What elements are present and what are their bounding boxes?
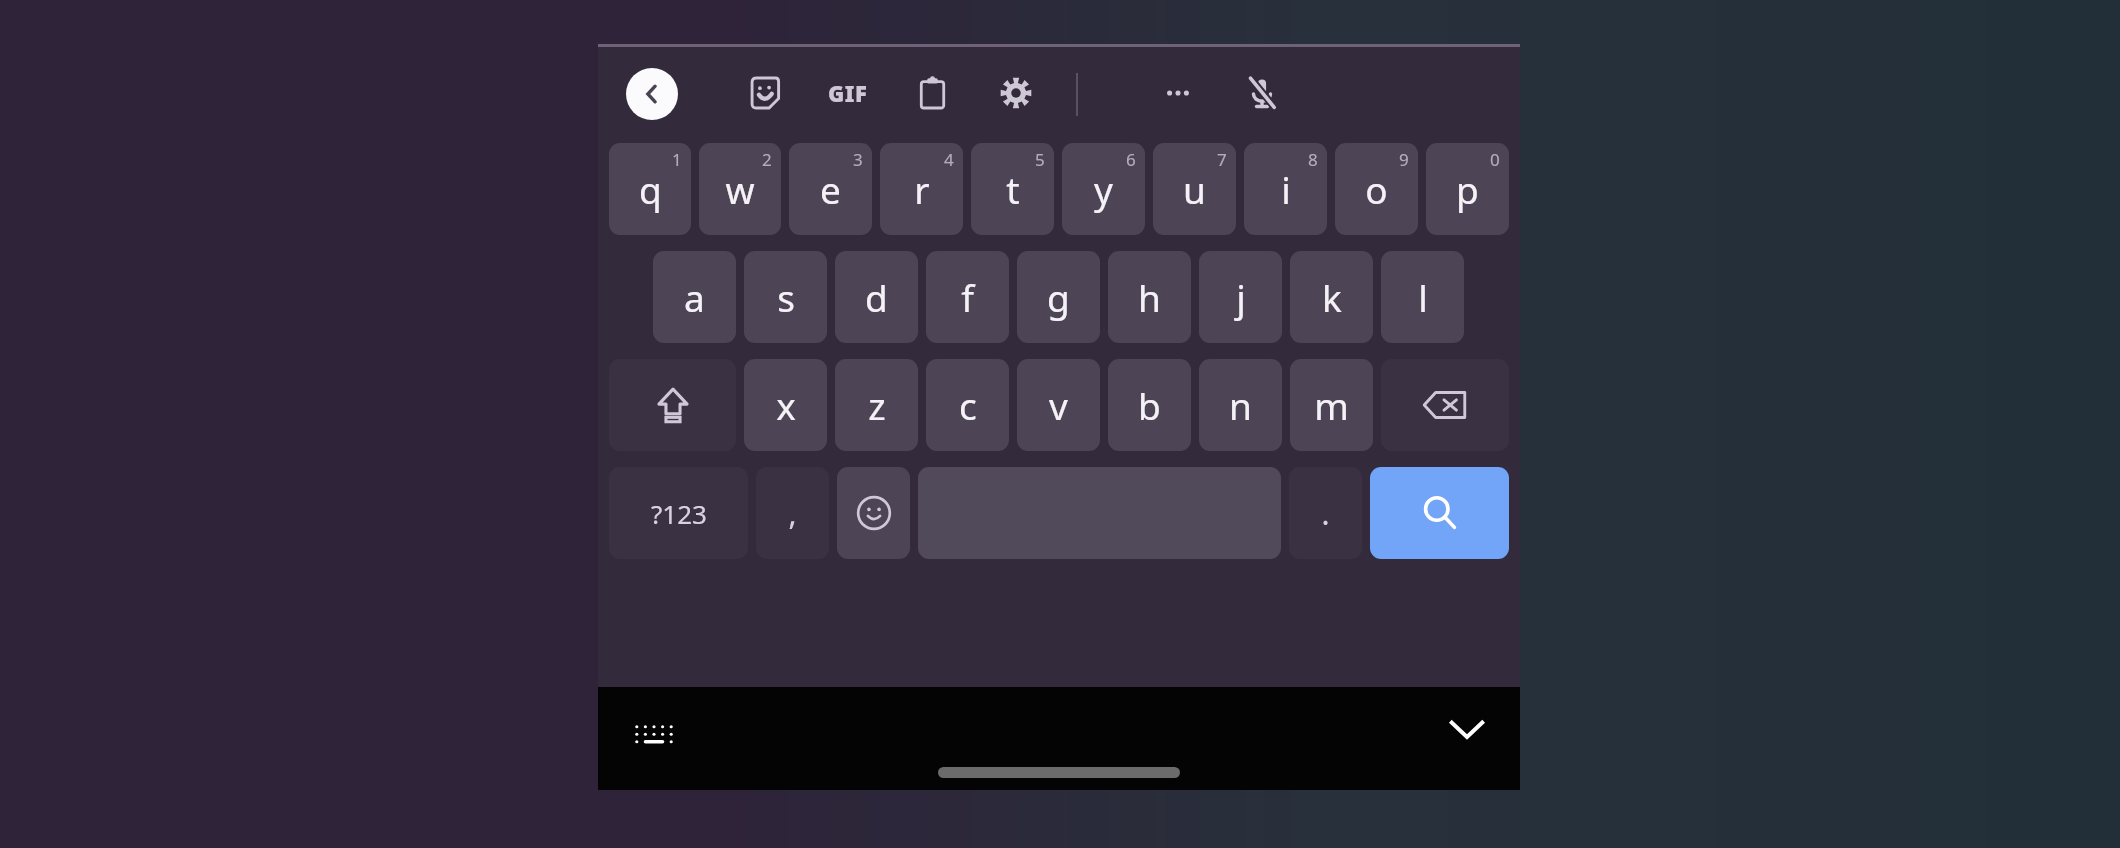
button[interactable]: a: [653, 251, 736, 343]
button[interactable]: Switch keyboard: [626, 711, 682, 757]
staticText: g: [1047, 272, 1070, 322]
staticText: o: [1365, 164, 1388, 214]
button[interactable]: f: [926, 251, 1009, 343]
staticText: 3: [853, 148, 863, 171]
button[interactable]: o: [1335, 143, 1418, 235]
button[interactable]: m: [1290, 359, 1373, 451]
staticText: c: [959, 380, 977, 430]
button[interactable]: Shift: [609, 359, 736, 451]
staticText: d: [865, 272, 888, 322]
staticText: s: [777, 272, 795, 322]
button[interactable]: Search: [1370, 467, 1509, 559]
staticText: k: [1322, 272, 1342, 322]
staticText: ?123: [651, 496, 707, 531]
staticText: 5: [1035, 148, 1045, 171]
staticText: ,: [788, 493, 797, 534]
button[interactable]: t: [971, 143, 1054, 235]
button[interactable]: Back: [626, 68, 678, 120]
staticText: 0: [1490, 148, 1500, 171]
button[interactable]: u: [1153, 143, 1236, 235]
staticText: 6: [1126, 148, 1136, 171]
staticText: 7: [1217, 148, 1227, 171]
staticText: p: [1456, 164, 1479, 214]
button[interactable]: ?123: [609, 467, 748, 559]
staticText: l: [1418, 272, 1428, 322]
button[interactable]: w: [699, 143, 781, 235]
staticText: i: [1281, 164, 1291, 214]
button[interactable]: Settings: [984, 61, 1048, 125]
button[interactable]: e: [789, 143, 872, 235]
button[interactable]: j: [1199, 251, 1282, 343]
button[interactable]: b: [1108, 359, 1191, 451]
button[interactable]: s: [744, 251, 827, 343]
staticText: x: [776, 380, 796, 430]
staticText: a: [684, 272, 705, 322]
button[interactable]: Emoji: [837, 467, 910, 559]
button[interactable]: c: [926, 359, 1009, 451]
button[interactable]: p: [1426, 143, 1509, 235]
button[interactable]: Hide keyboard: [1436, 698, 1498, 760]
button[interactable]: l: [1381, 251, 1464, 343]
button[interactable]: q: [609, 143, 691, 235]
button[interactable]: x: [744, 359, 827, 451]
button[interactable]: g: [1017, 251, 1100, 343]
staticText: .: [1321, 493, 1330, 534]
button[interactable]: n: [1199, 359, 1282, 451]
staticText: t: [1006, 164, 1020, 214]
staticText: w: [725, 164, 755, 214]
staticText: j: [1236, 272, 1246, 322]
staticText: f: [961, 272, 974, 322]
button[interactable]: Backspace: [1381, 359, 1509, 451]
staticText: GIF: [828, 78, 868, 108]
staticText: n: [1229, 380, 1252, 430]
staticText: q: [639, 164, 662, 214]
button[interactable]: ,: [756, 467, 829, 559]
staticText: h: [1138, 272, 1161, 322]
button[interactable]: GIF: [816, 61, 880, 125]
button[interactable]: v: [1017, 359, 1100, 451]
staticText: r: [914, 164, 930, 214]
button[interactable]: i: [1244, 143, 1327, 235]
button[interactable]: k: [1290, 251, 1373, 343]
staticText: 9: [1399, 148, 1409, 171]
staticText: 8: [1308, 148, 1318, 171]
staticText: 1: [672, 148, 682, 171]
staticText: u: [1183, 164, 1206, 214]
staticText: z: [868, 380, 886, 430]
staticText: y: [1094, 164, 1113, 214]
button[interactable]: r: [880, 143, 963, 235]
staticText: 4: [944, 148, 954, 171]
button[interactable]: Clipboard: [900, 61, 964, 125]
staticText: b: [1138, 380, 1161, 430]
button[interactable]: y: [1062, 143, 1145, 235]
button[interactable]: h: [1108, 251, 1191, 343]
staticText: m: [1314, 380, 1349, 430]
staticText: v: [1049, 380, 1068, 430]
staticText: e: [820, 164, 841, 214]
button[interactable]: z: [835, 359, 918, 451]
button[interactable]: Voice input off: [1230, 61, 1294, 125]
button[interactable]: .: [1289, 467, 1362, 559]
button[interactable]: d: [835, 251, 918, 343]
staticText: 2: [762, 148, 772, 171]
button[interactable]: More options: [1146, 61, 1210, 125]
button[interactable]: Stickers: [733, 61, 797, 125]
